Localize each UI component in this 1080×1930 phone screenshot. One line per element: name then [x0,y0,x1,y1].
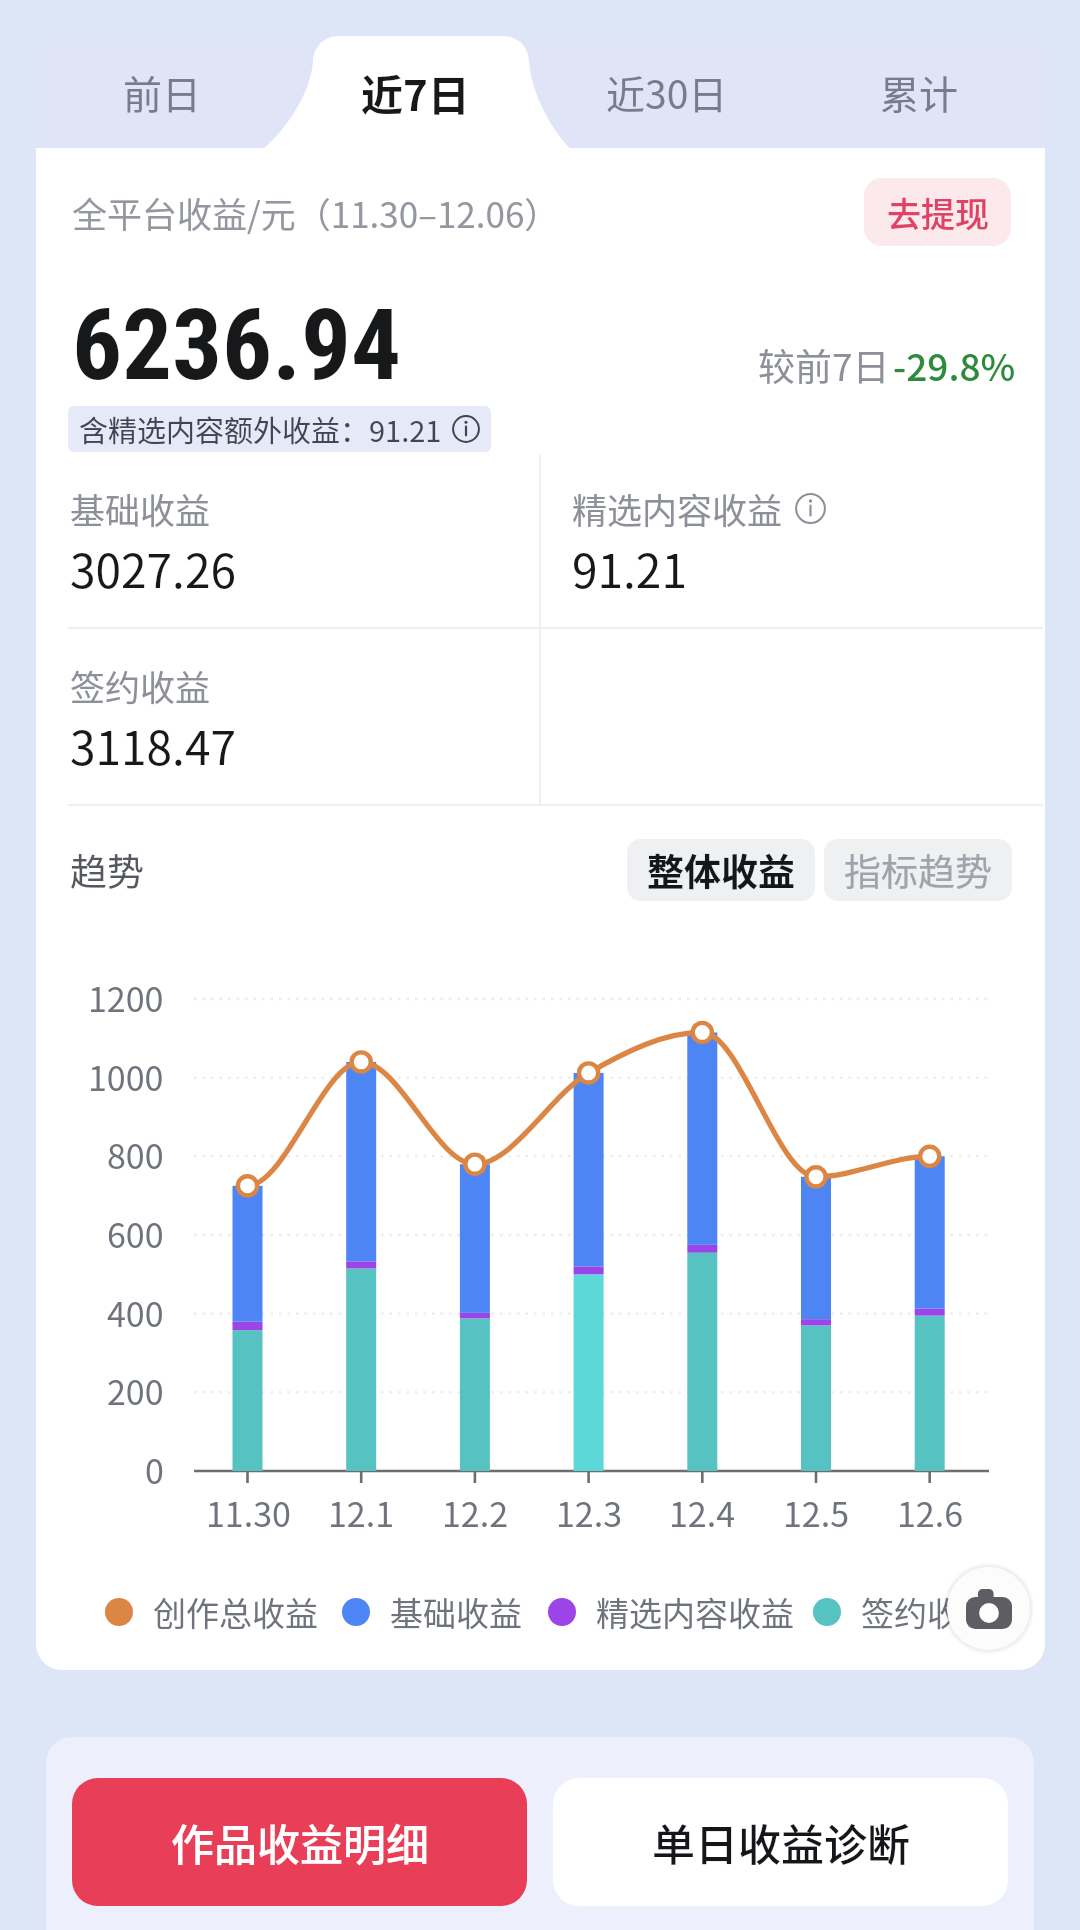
staticText: 1000 [88,1052,164,1101]
staticText: 12.3 [556,1488,623,1537]
staticText: 12.1 [328,1488,395,1537]
staticText: 精选内容收益 [596,1588,794,1636]
staticText: 6236.94 [72,287,401,403]
staticText: 400 [107,1288,164,1337]
staticText: 前日 [123,64,202,120]
staticText: 去提现 [887,188,989,237]
staticText: 全平台收益/元（11.30–12.06） [72,187,560,238]
staticText: 含精选内容额外收益：91.21 [79,408,442,450]
staticText: 3027.26 [70,535,236,602]
button[interactable]: 单日收益诊断 [553,1778,1008,1906]
button[interactable]: 累计 [793,36,1045,148]
staticText: 1200 [88,973,164,1022]
staticText: 12.4 [669,1488,736,1537]
staticText: 91.21 [572,535,687,602]
button[interactable]: 近7日 [289,36,541,148]
button[interactable]: Screenshot [943,1563,1034,1654]
staticText: 较前7日 [758,338,890,392]
button[interactable]: 作品收益明细 [72,1778,527,1906]
button[interactable]: 去提现 [864,178,1011,246]
staticText: 整体收益 [647,843,795,897]
staticText: 趋势 [70,843,144,897]
staticText: 12.6 [897,1488,964,1537]
staticText: 12.5 [783,1488,850,1537]
button[interactable]: 前日 [36,36,289,148]
staticText: 600 [107,1209,164,1258]
staticText: 签约收益 [70,660,211,711]
staticText: 签约收益 [861,1588,993,1636]
staticText: 基础收益 [70,483,211,534]
staticText: -29.8% [893,338,1016,392]
staticText: 指标趋势 [844,843,992,897]
staticText: 800 [107,1130,164,1179]
staticText: 200 [107,1366,164,1415]
staticText: 3118.47 [70,712,236,779]
button[interactable]: 整体收益 [627,839,815,901]
staticText: 11.30 [206,1488,291,1537]
staticText: 精选内容收益 [572,483,783,534]
button[interactable]: 指标趋势 [824,839,1012,901]
button[interactable]: 近30日 [541,36,793,148]
staticText: 基础收益 [390,1588,522,1636]
staticText: 累计 [880,64,959,120]
staticText: 单日收益诊断 [652,1811,910,1873]
staticText: 0 [145,1445,164,1494]
staticText: 作品收益明细 [171,1811,429,1873]
staticText: 12.2 [442,1488,509,1537]
staticText: 近30日 [606,64,728,120]
staticText: 创作总收益 [153,1588,318,1636]
staticText: 近7日 [361,62,470,123]
